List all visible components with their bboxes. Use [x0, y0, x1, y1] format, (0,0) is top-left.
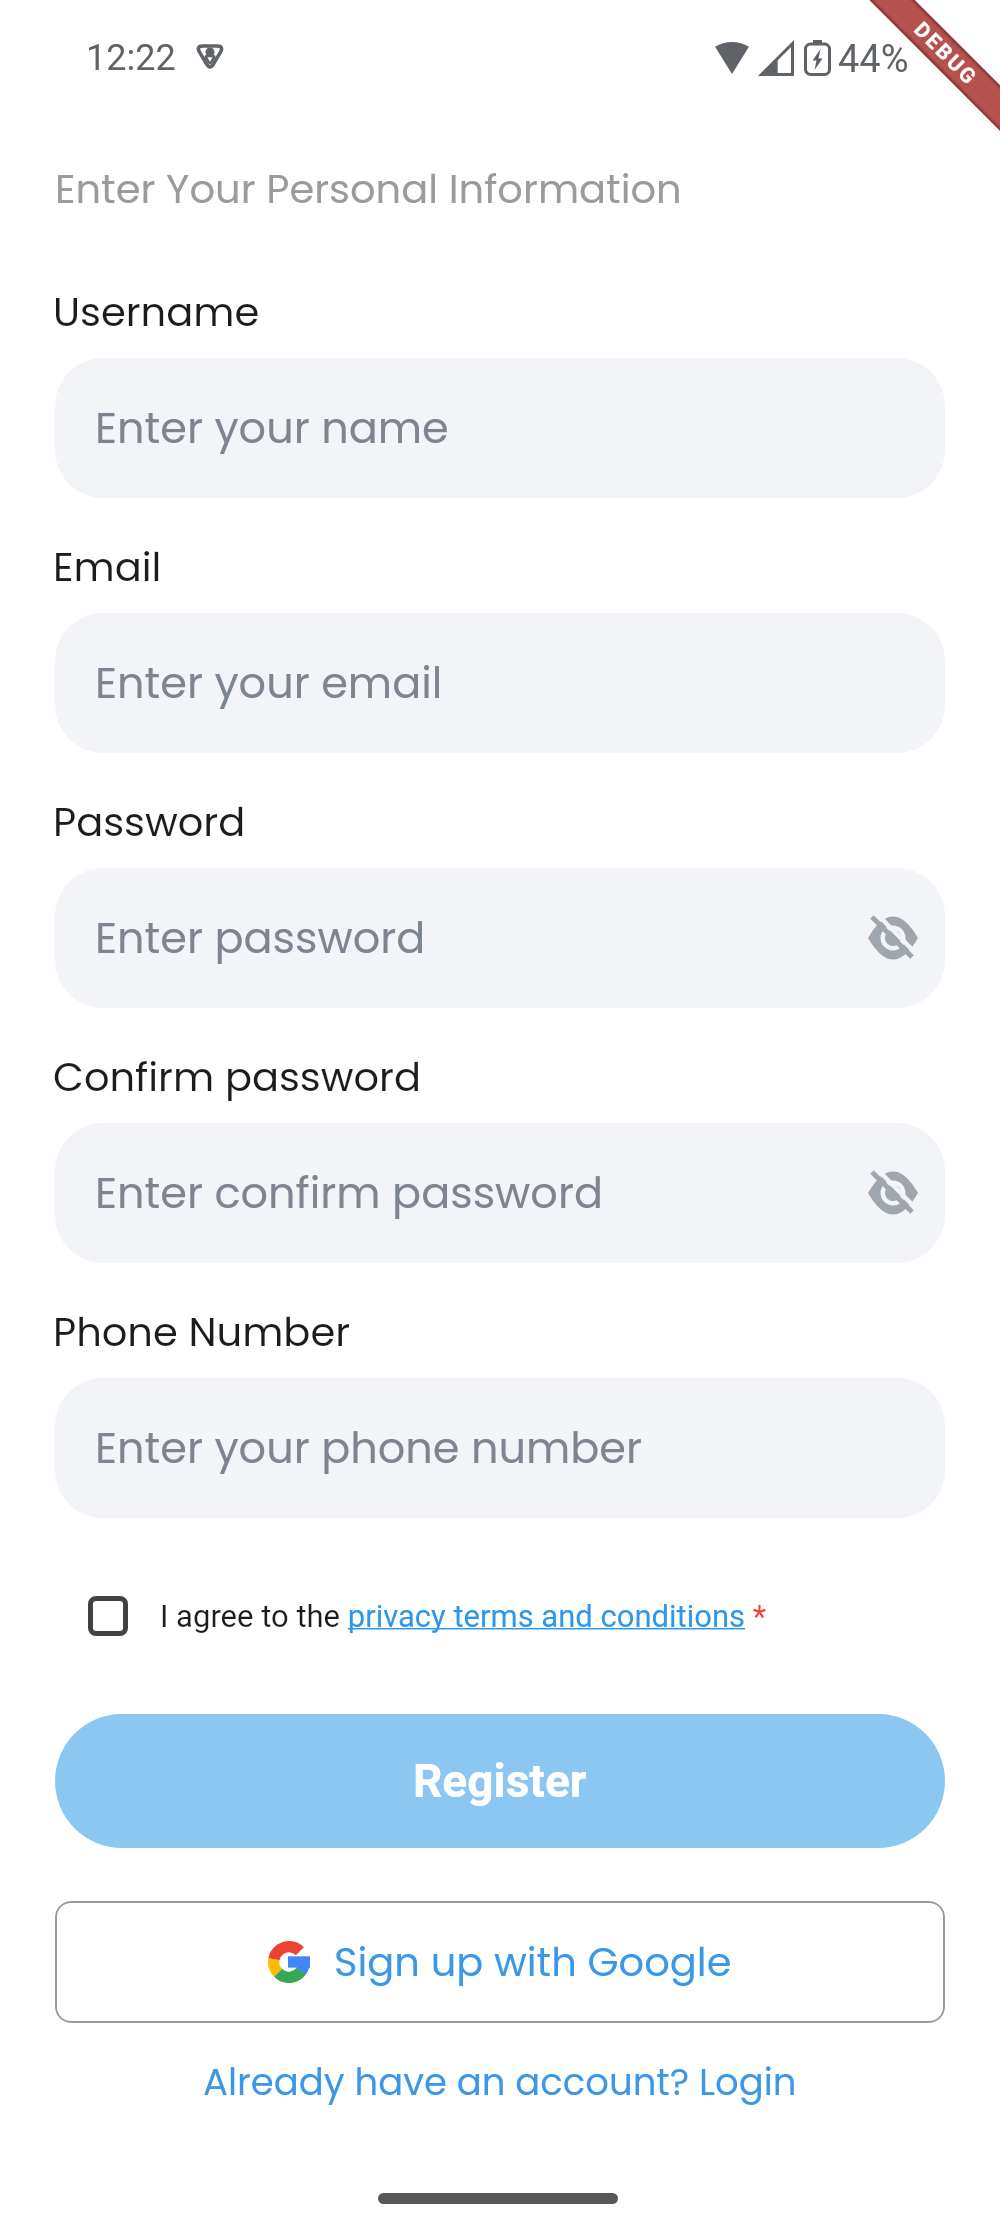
- button[interactable]: [867, 915, 919, 961]
- staticText: I agree to the privacy terms and conditi…: [160, 1598, 767, 1634]
- staticText: Phone Number: [53, 1304, 351, 1360]
- button[interactable]: Sign up with Google: [55, 1901, 945, 2023]
- staticText: Enter your phone number: [95, 1418, 643, 1478]
- button[interactable]: Enter your name: [55, 358, 945, 498]
- staticText: Enter password: [95, 908, 426, 968]
- button[interactable]: I agree to the privacy terms and conditi…: [88, 1592, 767, 1640]
- staticText: Enter your email: [95, 653, 443, 713]
- button[interactable]: Register: [55, 1714, 945, 1848]
- button[interactable]: Enter confirm password: [55, 1123, 945, 1263]
- button[interactable]: Enter password: [55, 868, 945, 1008]
- button[interactable]: Enter your phone number: [55, 1378, 945, 1518]
- staticText: Enter Your Personal Information: [55, 161, 682, 217]
- staticText: Username: [53, 284, 260, 340]
- staticText: Sign up with Google: [334, 1934, 732, 1990]
- staticText: DEBUG: [908, 17, 983, 91]
- staticText: Enter confirm password: [95, 1163, 604, 1223]
- button[interactable]: Enter your email: [55, 613, 945, 753]
- button[interactable]: [867, 1170, 919, 1216]
- staticText: Confirm password: [53, 1049, 422, 1105]
- staticText: Register: [413, 1754, 587, 1808]
- button[interactable]: Already have an account? Login: [203, 2056, 797, 2108]
- staticText: 12:22: [86, 37, 176, 79]
- staticText: 44%: [838, 37, 909, 81]
- staticText: Email: [53, 539, 162, 595]
- staticText: Password: [53, 794, 246, 850]
- staticText: Enter your name: [95, 398, 449, 458]
